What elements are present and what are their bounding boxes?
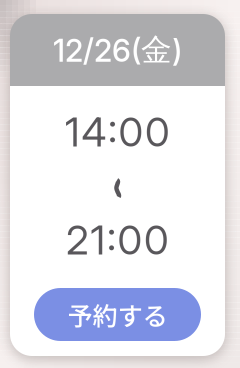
- staticText: 14:00: [65, 108, 170, 156]
- staticText: 予約する: [67, 296, 167, 333]
- staticText: 21:00: [66, 216, 169, 264]
- button[interactable]: 予約する: [34, 288, 201, 341]
- staticText: 12/26(金): [53, 31, 182, 69]
